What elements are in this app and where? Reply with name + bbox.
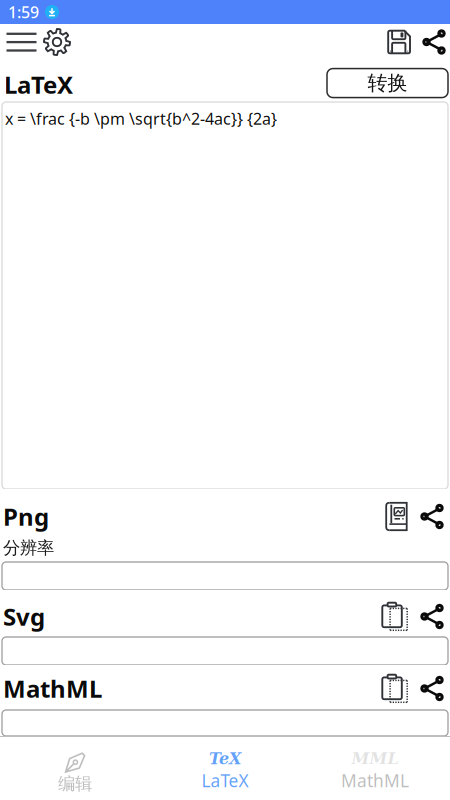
button[interactable]: Share PNG (409, 504, 443, 529)
button[interactable]: Preview PNG (385, 501, 409, 531)
button[interactable]: 编辑 (0, 737, 150, 800)
button[interactable]: Menu (3, 24, 40, 60)
button[interactable]: Copy MathML (381, 673, 409, 704)
button[interactable]: Settings (40, 24, 74, 60)
staticText: MathML (341, 769, 409, 792)
staticText: LaTeX (4, 69, 73, 100)
button[interactable]: MML (300, 737, 450, 800)
button[interactable]: Share MathML (409, 676, 443, 701)
staticText: 转换 (367, 71, 407, 95)
button[interactable]: Copy SVG (381, 601, 409, 632)
staticText: Png (3, 501, 49, 532)
button[interactable]: Save (383, 24, 421, 60)
staticText: Svg (3, 601, 45, 632)
button[interactable]: Share SVG (409, 604, 443, 629)
button[interactable]: TeX (150, 737, 300, 800)
staticText: 编辑 (58, 773, 92, 794)
staticText: 分辨率 (3, 537, 54, 559)
staticText: x = \frac {-b \pm \sqrt{b^2-4ac}} {2a} (5, 108, 277, 129)
staticText: MathML (3, 673, 102, 704)
staticText: LaTeX (201, 769, 248, 792)
button[interactable]: 转换 (327, 69, 448, 98)
staticText: MML (351, 749, 398, 768)
staticText: TeX (209, 749, 241, 768)
staticText: 1:59 (8, 1, 39, 23)
button[interactable]: Share (421, 24, 447, 60)
